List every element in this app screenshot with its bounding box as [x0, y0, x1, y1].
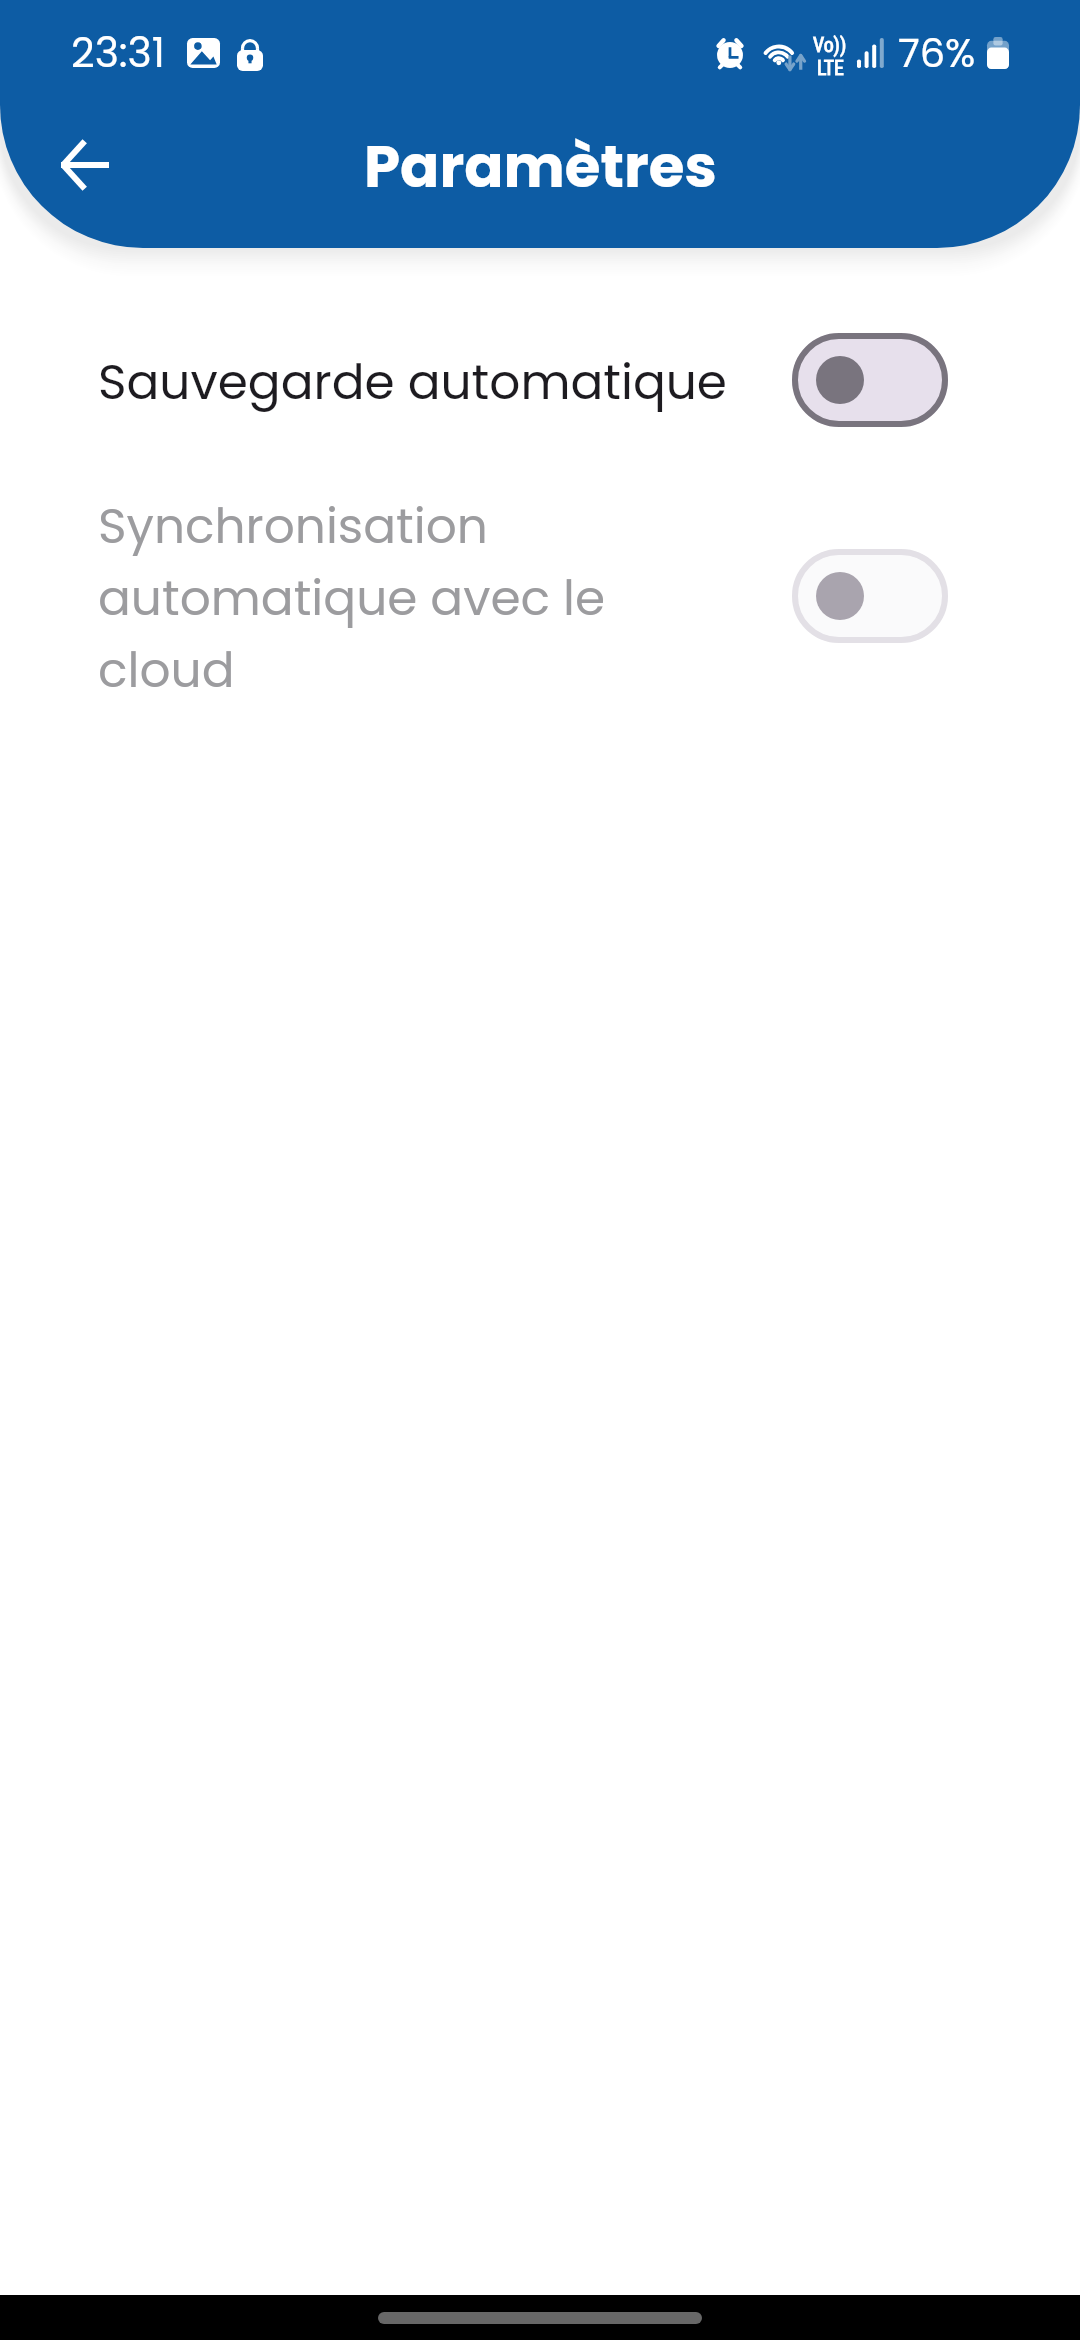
- button[interactable]: Retour: [49, 129, 121, 201]
- button[interactable]: Activer la sauvegarde automatique: [792, 333, 948, 427]
- button[interactable]: Synchronisation automatique avec le clou…: [0, 460, 1080, 732]
- staticText: Vo)): [813, 34, 847, 57]
- staticText: Synchronisation automatique avec le clou…: [98, 492, 737, 704]
- staticText: 76%: [898, 25, 976, 81]
- staticText: LTE: [817, 57, 844, 80]
- staticText: Sauvegarde automatique: [98, 348, 737, 416]
- button[interactable]: Activer la synchronisation automatique: [792, 549, 948, 643]
- button[interactable]: Sauvegarde automatique: [0, 303, 1080, 457]
- staticText: Paramètres: [364, 126, 717, 207]
- staticText: 23:31: [71, 24, 165, 82]
